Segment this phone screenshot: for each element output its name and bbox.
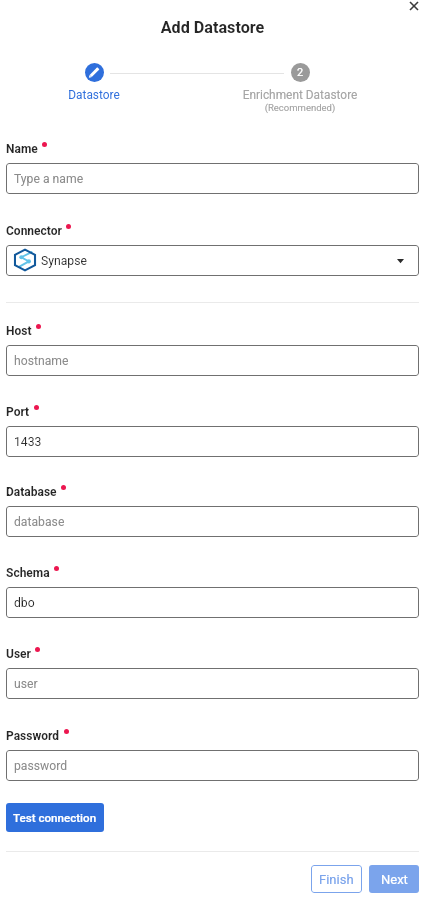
staticText: Test connection <box>13 811 97 825</box>
staticText: Datastore <box>63 88 125 102</box>
staticText: user <box>14 677 404 691</box>
staticText: 1433 <box>14 435 404 449</box>
staticText: Password <box>6 729 60 743</box>
button[interactable]: Finish <box>311 865 362 893</box>
button[interactable]: dbo <box>6 587 419 618</box>
staticText: (Recommended) <box>232 102 368 113</box>
staticText: Type a name <box>14 172 404 186</box>
staticText: hostname <box>14 354 404 368</box>
button[interactable]: Type a name <box>6 163 419 194</box>
button[interactable]: user <box>6 668 419 699</box>
staticText: database <box>14 515 404 529</box>
staticText: Next <box>381 872 408 887</box>
staticText: Finish <box>319 872 354 887</box>
staticText: Port <box>6 405 30 419</box>
button[interactable]: 1433 <box>6 426 419 457</box>
button[interactable]: hostname <box>6 345 419 376</box>
staticText: dbo <box>14 596 404 610</box>
staticText: Connector <box>6 224 62 238</box>
staticText: Schema <box>6 566 50 580</box>
staticText: password <box>14 759 404 773</box>
staticText: 2 <box>297 66 304 79</box>
button[interactable]: 2 <box>232 63 368 113</box>
staticText: Enrichment Datastore <box>232 88 368 102</box>
button[interactable]: Test connection <box>6 803 104 832</box>
staticText: Database <box>6 485 57 499</box>
staticText: Synapse <box>41 254 397 268</box>
staticText: User <box>6 647 31 661</box>
staticText: Add Datastore <box>0 18 425 37</box>
staticText: Host <box>6 324 32 338</box>
button[interactable]: password <box>6 750 419 781</box>
button[interactable]: Next <box>369 865 419 893</box>
button[interactable]: Synapse <box>6 245 419 276</box>
staticText: Name <box>6 142 38 156</box>
button[interactable]: Close <box>402 0 425 18</box>
button[interactable]: Datastore <box>63 63 125 102</box>
button[interactable]: database <box>6 506 419 537</box>
